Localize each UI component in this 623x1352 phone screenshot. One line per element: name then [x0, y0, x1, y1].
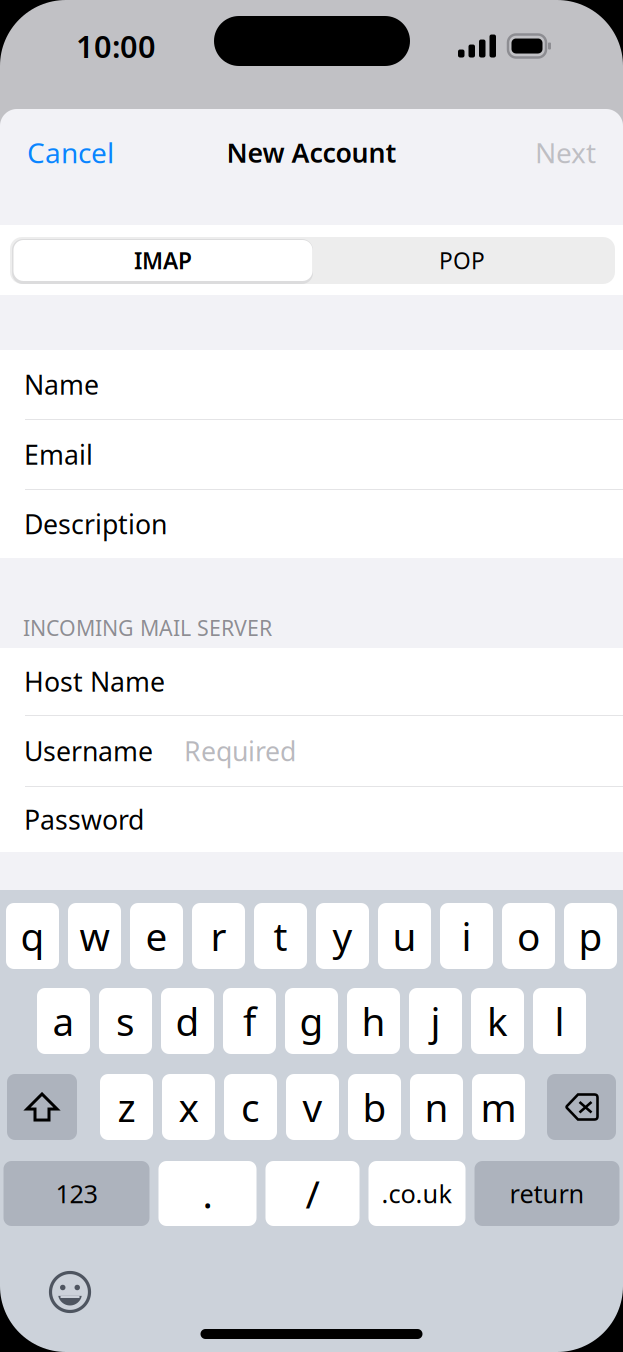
button[interactable]: n — [410, 1074, 463, 1140]
staticText: y — [332, 910, 352, 962]
staticText: t — [273, 910, 287, 962]
button[interactable]: .co.uk — [368, 1161, 465, 1226]
button[interactable]: Name — [0, 350, 623, 420]
button[interactable]: x — [162, 1074, 215, 1140]
staticText: INCOMING MAIL SERVER — [23, 614, 272, 642]
button[interactable]: e — [130, 903, 183, 969]
staticText: Required — [184, 733, 296, 769]
staticText: i — [461, 910, 471, 962]
button[interactable]: Shift — [7, 1074, 77, 1140]
staticText: k — [487, 995, 508, 1047]
staticText: Email — [24, 437, 93, 472]
button[interactable]: r — [192, 903, 245, 969]
button[interactable]: Delete — [547, 1074, 616, 1140]
button[interactable]: . — [158, 1161, 256, 1226]
button[interactable]: m — [472, 1074, 525, 1140]
button[interactable]: Password — [0, 787, 623, 852]
staticText: Host Name — [24, 664, 165, 699]
button[interactable]: u — [378, 903, 431, 969]
staticText: 123 — [55, 1177, 97, 1210]
staticText: u — [392, 910, 416, 962]
staticText: POP — [439, 245, 485, 275]
button[interactable]: Description — [0, 490, 623, 558]
button[interactable]: POP — [312, 240, 611, 281]
staticText: r — [210, 910, 226, 962]
staticText: s — [116, 995, 135, 1047]
staticText: IMAP — [134, 245, 192, 275]
staticText: Next — [535, 134, 596, 171]
staticText: d — [175, 995, 199, 1047]
button[interactable]: return — [474, 1161, 619, 1226]
staticText: p — [578, 910, 602, 962]
button[interactable]: / — [265, 1161, 359, 1226]
staticText: Name — [24, 367, 99, 402]
button[interactable]: Email — [0, 420, 623, 490]
staticText: Cancel — [27, 134, 114, 171]
staticText: .co.uk — [381, 1177, 452, 1210]
button[interactable]: g — [285, 988, 338, 1054]
button[interactable]: d — [161, 988, 214, 1054]
button[interactable]: s — [99, 988, 152, 1054]
button[interactable]: a — [37, 988, 90, 1054]
staticText: Password — [24, 802, 144, 837]
button[interactable]: c — [224, 1074, 277, 1140]
button[interactable]: f — [223, 988, 276, 1054]
staticText: New Account — [226, 135, 396, 170]
button[interactable]: t — [254, 903, 307, 969]
button[interactable]: b — [348, 1074, 401, 1140]
button[interactable]: IMAP — [13, 240, 312, 281]
staticText: Username — [24, 733, 153, 769]
staticText: g — [299, 995, 323, 1047]
button[interactable]: l — [533, 988, 586, 1054]
staticText: m — [480, 1081, 516, 1133]
button[interactable]: Host Name — [0, 648, 623, 716]
staticText: e — [145, 910, 167, 962]
staticText: return — [509, 1177, 584, 1210]
staticText: b — [362, 1081, 386, 1133]
staticText: n — [424, 1081, 448, 1133]
button[interactable]: Emoji keyboard — [44, 1266, 96, 1318]
button[interactable]: v — [286, 1074, 339, 1140]
staticText: q — [20, 910, 44, 962]
button[interactable]: y — [316, 903, 369, 969]
staticText: / — [305, 1168, 319, 1219]
button[interactable]: q — [6, 903, 59, 969]
staticText: c — [241, 1081, 260, 1133]
staticText: 10:00 — [76, 26, 156, 66]
button[interactable]: h — [347, 988, 400, 1054]
button[interactable]: 123 — [3, 1161, 149, 1226]
staticText: l — [554, 995, 564, 1047]
button[interactable]: z — [100, 1074, 153, 1140]
staticText: o — [517, 910, 540, 962]
staticText: f — [243, 995, 256, 1047]
staticText: x — [178, 1081, 198, 1133]
staticText: z — [117, 1081, 135, 1133]
staticText: . — [202, 1168, 212, 1219]
staticText: h — [361, 995, 385, 1047]
staticText: v — [302, 1081, 322, 1133]
staticText: j — [430, 995, 440, 1047]
staticText: a — [52, 995, 74, 1047]
button[interactable]: o — [502, 903, 555, 969]
button[interactable]: Next — [521, 109, 623, 196]
button[interactable]: p — [564, 903, 617, 969]
button[interactable]: j — [409, 988, 462, 1054]
staticText: w — [79, 910, 109, 962]
button[interactable]: k — [471, 988, 524, 1054]
button[interactable]: Username — [0, 716, 623, 787]
button[interactable]: w — [68, 903, 121, 969]
staticText: Description — [24, 506, 167, 542]
button[interactable]: i — [440, 903, 493, 969]
button[interactable]: Cancel — [0, 109, 128, 196]
